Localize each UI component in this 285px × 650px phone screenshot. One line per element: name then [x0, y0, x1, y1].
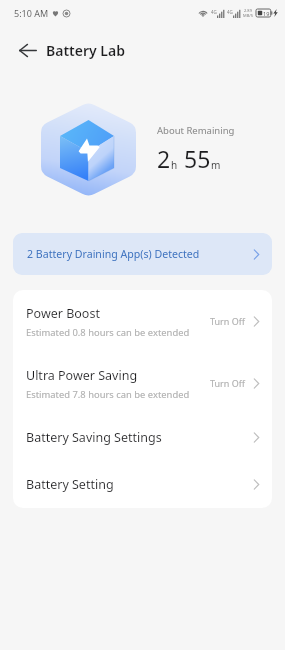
staticText: Turn Off: [210, 377, 245, 389]
button[interactable]: 2 Battery Draining App(s) Detected: [13, 233, 272, 275]
staticText: 55: [184, 143, 211, 174]
staticText: Estimated 0.8 hours can be extended: [26, 326, 190, 339]
button[interactable]: Ultra Power Saving: [13, 352, 272, 414]
staticText: 4G: [211, 9, 217, 15]
staticText: 4G: [227, 9, 233, 15]
staticText: 2 Battery Draining App(s) Detected: [27, 247, 200, 261]
staticText: About Remaining: [157, 124, 235, 137]
button[interactable]: Back: [12, 34, 44, 66]
button[interactable]: Power Boost: [13, 290, 272, 352]
staticText: MB/S: [243, 13, 253, 18]
staticText: 5:10 AM: [14, 7, 49, 19]
button[interactable]: Battery Saving Settings: [13, 414, 272, 461]
staticText: Power Boost: [26, 305, 100, 322]
staticText: 2: [157, 143, 171, 174]
staticText: m: [211, 158, 221, 172]
staticText: 19: [263, 10, 270, 17]
staticText: Turn Off: [210, 315, 245, 327]
staticText: Ultra Power Saving: [26, 367, 138, 384]
staticText: h: [171, 158, 178, 172]
button[interactable]: Battery Setting: [13, 461, 272, 508]
staticText: Battery Saving Settings: [26, 429, 253, 446]
staticText: 2.89: [244, 8, 252, 13]
staticText: Battery Setting: [26, 476, 253, 493]
staticText: Estimated 7.8 hours can be extended: [26, 388, 190, 401]
staticText: Battery Lab: [46, 41, 125, 60]
